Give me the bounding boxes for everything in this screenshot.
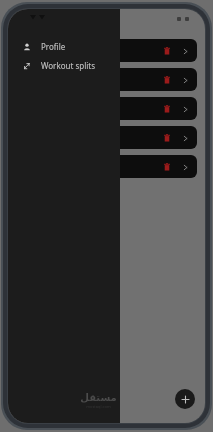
button[interactable]: Delete Arms	[161, 103, 173, 115]
button[interactable]: Legs	[16, 155, 197, 178]
staticText: mostaql.com	[86, 404, 111, 409]
button[interactable]: Delete Legs	[161, 161, 173, 173]
button[interactable]: Delete Chest	[161, 45, 173, 57]
button[interactable]: Delete Shoulders	[161, 132, 173, 144]
button[interactable]: Open Chest	[179, 45, 191, 57]
button[interactable]: Workout splits	[8, 56, 120, 75]
button[interactable]: Arms	[16, 97, 197, 120]
button[interactable]: Open Legs	[179, 161, 191, 173]
button[interactable]: Open Back	[179, 74, 191, 86]
button[interactable]: Shoulders	[16, 126, 197, 149]
staticText: مستقل	[80, 392, 117, 404]
button[interactable]: Profile	[8, 37, 120, 56]
button[interactable]: Add workout split	[175, 389, 195, 409]
button[interactable]: Open Arms	[179, 103, 191, 115]
button[interactable]: Chest	[16, 39, 197, 62]
button[interactable]: Delete Back	[161, 74, 173, 86]
staticText: Chest	[26, 45, 48, 56]
staticText: Profile	[41, 41, 66, 52]
button[interactable]: Back	[16, 68, 197, 91]
staticText: Workout splits	[41, 60, 96, 71]
button[interactable]: Open Shoulders	[179, 132, 191, 144]
